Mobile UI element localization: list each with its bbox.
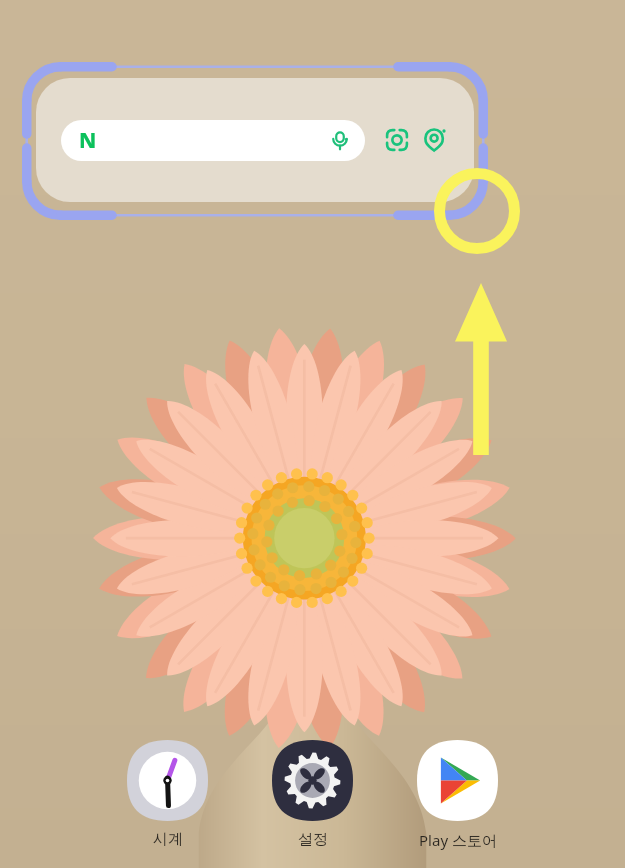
button[interactable]: N — [61, 120, 365, 161]
staticText: 설정 — [298, 830, 328, 849]
button[interactable]: 설정 — [254, 740, 371, 849]
button[interactable]: 시계 — [109, 740, 226, 849]
staticText: 시계 — [153, 830, 183, 849]
button[interactable]: Voice search — [327, 128, 353, 154]
staticText: N — [79, 126, 97, 155]
button[interactable]: N — [36, 78, 474, 202]
button[interactable]: Smart Lens — [382, 125, 412, 155]
button[interactable]: Nearby places — [420, 125, 450, 155]
button[interactable]: Play 스토어 — [399, 740, 516, 850]
staticText: Play 스토어 — [419, 830, 497, 850]
